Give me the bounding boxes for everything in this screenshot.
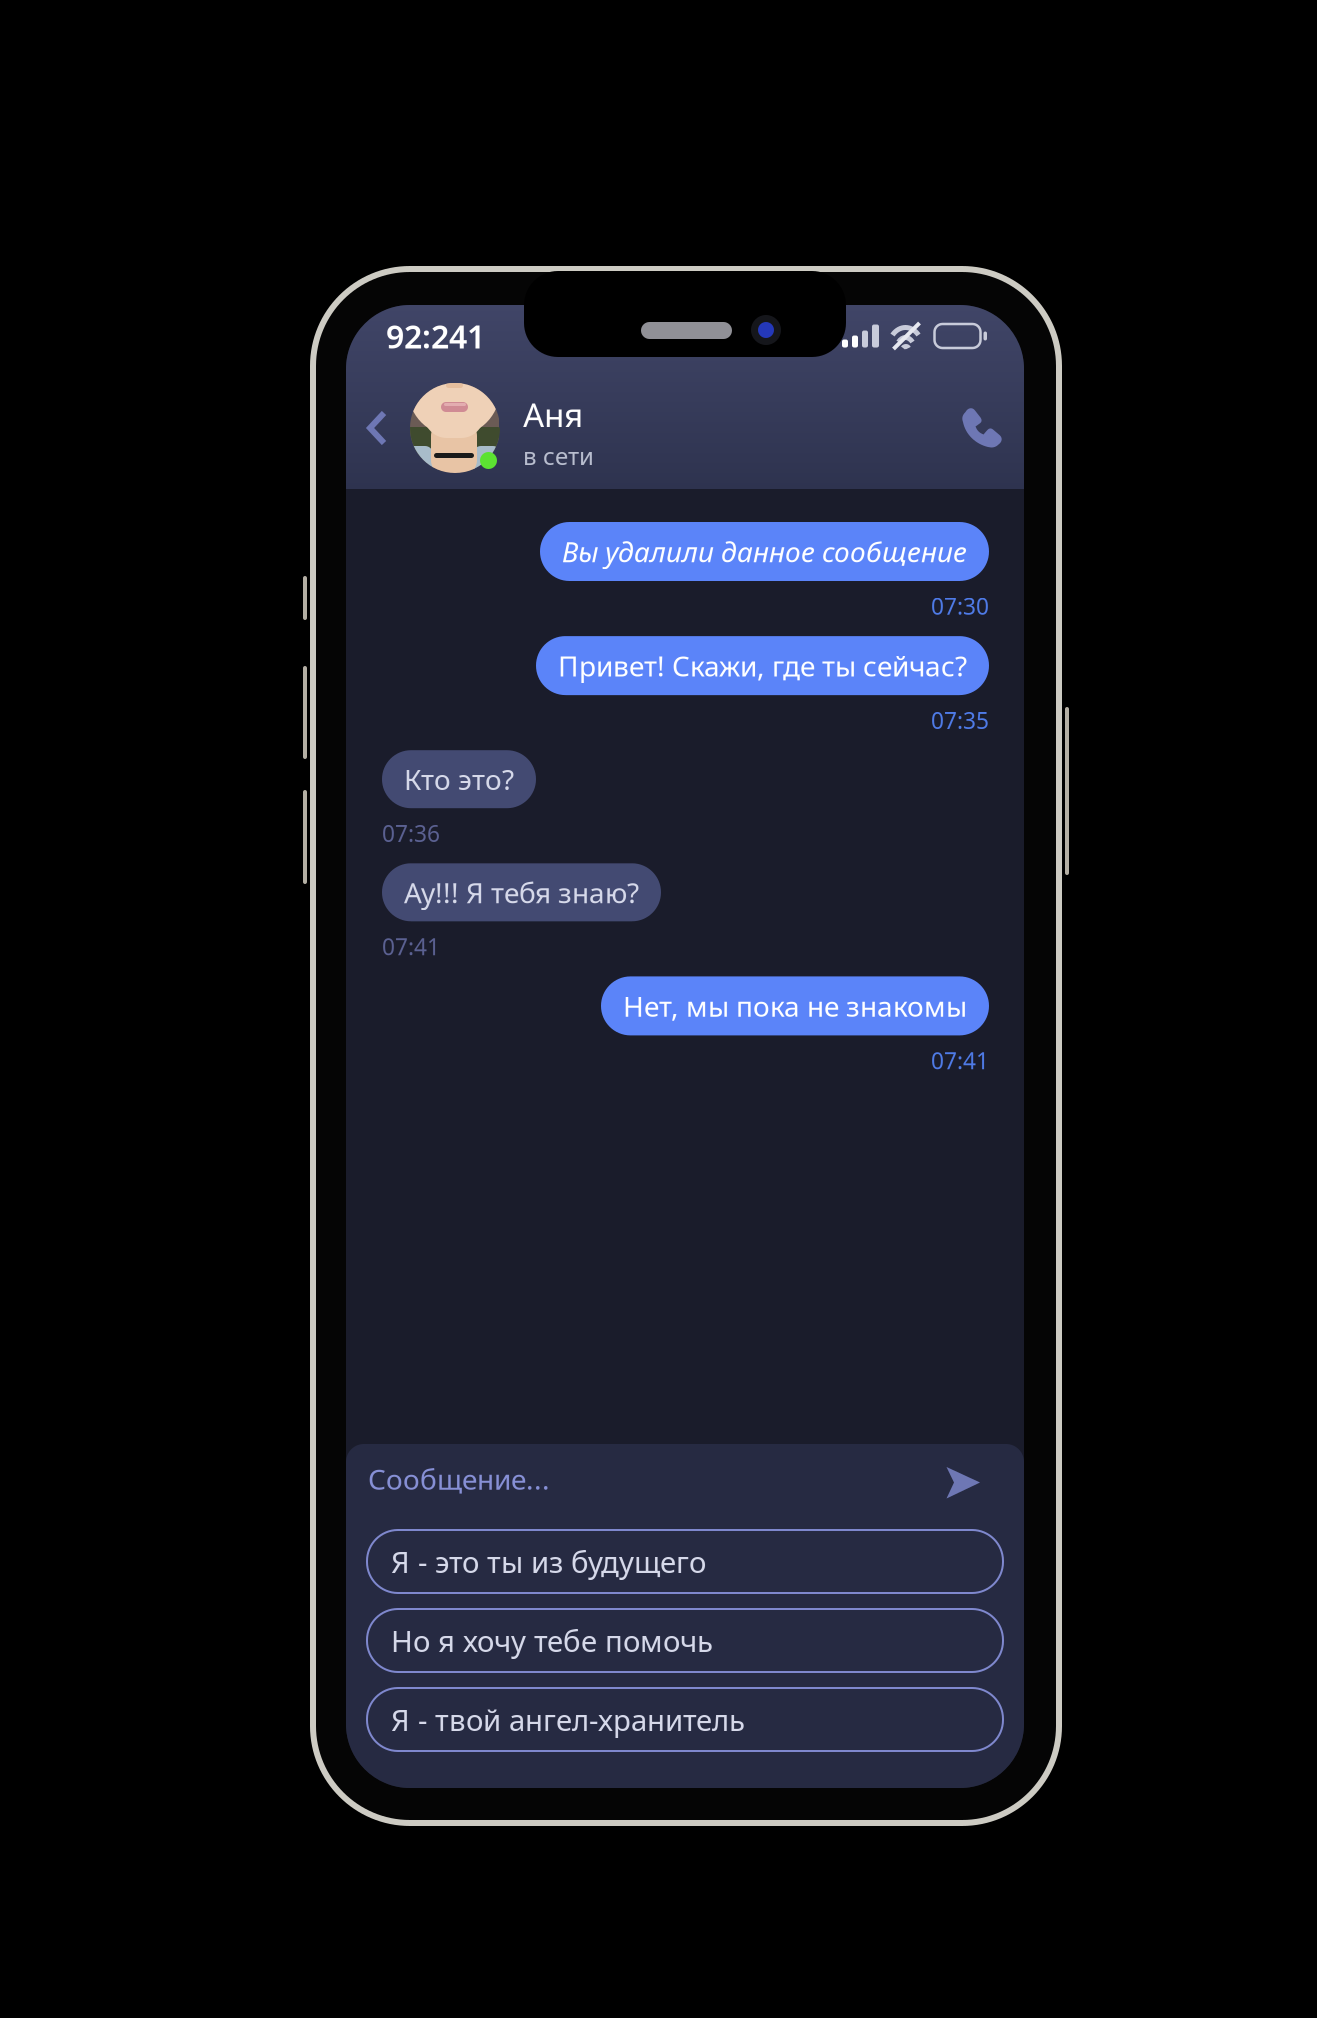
button[interactable]: Я - твой ангел-хранитель (367, 1688, 1003, 1751)
staticText: 07:35 (931, 705, 989, 735)
staticText: Нет, мы пока не знакомы (623, 987, 967, 1024)
staticText: Я - это ты из будущего (391, 1542, 706, 1581)
staticText: 07:36 (382, 818, 440, 848)
staticText: Но я хочу тебе помочь (391, 1621, 713, 1660)
staticText: 92:241 (386, 315, 485, 357)
button[interactable]: Back (358, 402, 396, 454)
staticText: 07:41 (382, 931, 440, 961)
button[interactable]: Send (946, 1462, 981, 1495)
button[interactable]: Я - это ты из будущего (367, 1530, 1003, 1593)
staticText: Аня (523, 392, 583, 437)
staticText: Я - твой ангел-хранитель (391, 1700, 745, 1739)
button[interactable]: Call (956, 403, 1006, 453)
staticText: 07:30 (931, 591, 989, 621)
staticText: Ау!!! Я тебя знаю? (404, 874, 639, 911)
staticText: 07:41 (931, 1045, 989, 1075)
staticText: Вы удалили данное сообщение (562, 533, 967, 570)
staticText: Привет! Скажи, где ты сейчас? (558, 647, 967, 684)
staticText: Сообщение... (368, 1460, 550, 1498)
button[interactable]: Но я хочу тебе помочь (367, 1609, 1003, 1672)
staticText: Кто это? (404, 761, 514, 798)
staticText: в сети (523, 440, 594, 472)
